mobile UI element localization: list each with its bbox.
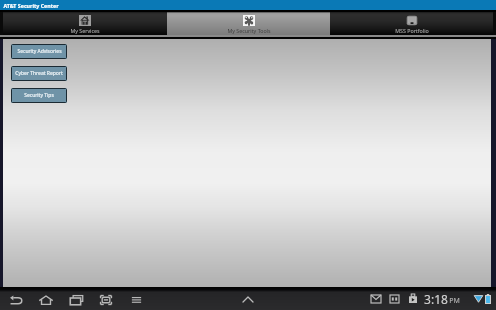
staticText: 3:18 [424, 291, 448, 307]
staticText: Cyber Threat Report [15, 70, 63, 77]
button[interactable]: Menu [121, 287, 151, 310]
button[interactable]: My Services [3, 12, 167, 35]
button[interactable]: Recent apps [61, 287, 91, 310]
staticText: My Security Tools [227, 27, 271, 34]
button[interactable]: Back [1, 287, 31, 310]
staticText: My Services [70, 27, 100, 34]
button[interactable]: MSS Portfolio [330, 12, 493, 35]
staticText: Security Advisories [17, 48, 62, 55]
button[interactable]: Home [31, 287, 61, 310]
staticText: PM [449, 296, 460, 306]
button[interactable]: My Security Tools [167, 12, 330, 35]
staticText: Security Tips [24, 92, 54, 99]
staticText: AT&T Security Center [3, 2, 59, 9]
button[interactable]: Security Tips [11, 88, 67, 103]
button[interactable]: Security Advisories [11, 44, 67, 59]
staticText: MSS Portfolio [395, 27, 429, 34]
button[interactable]: Cyber Threat Report [11, 66, 67, 81]
button[interactable]: Show notifications [238, 288, 258, 310]
button[interactable]: Screenshot [91, 287, 121, 310]
